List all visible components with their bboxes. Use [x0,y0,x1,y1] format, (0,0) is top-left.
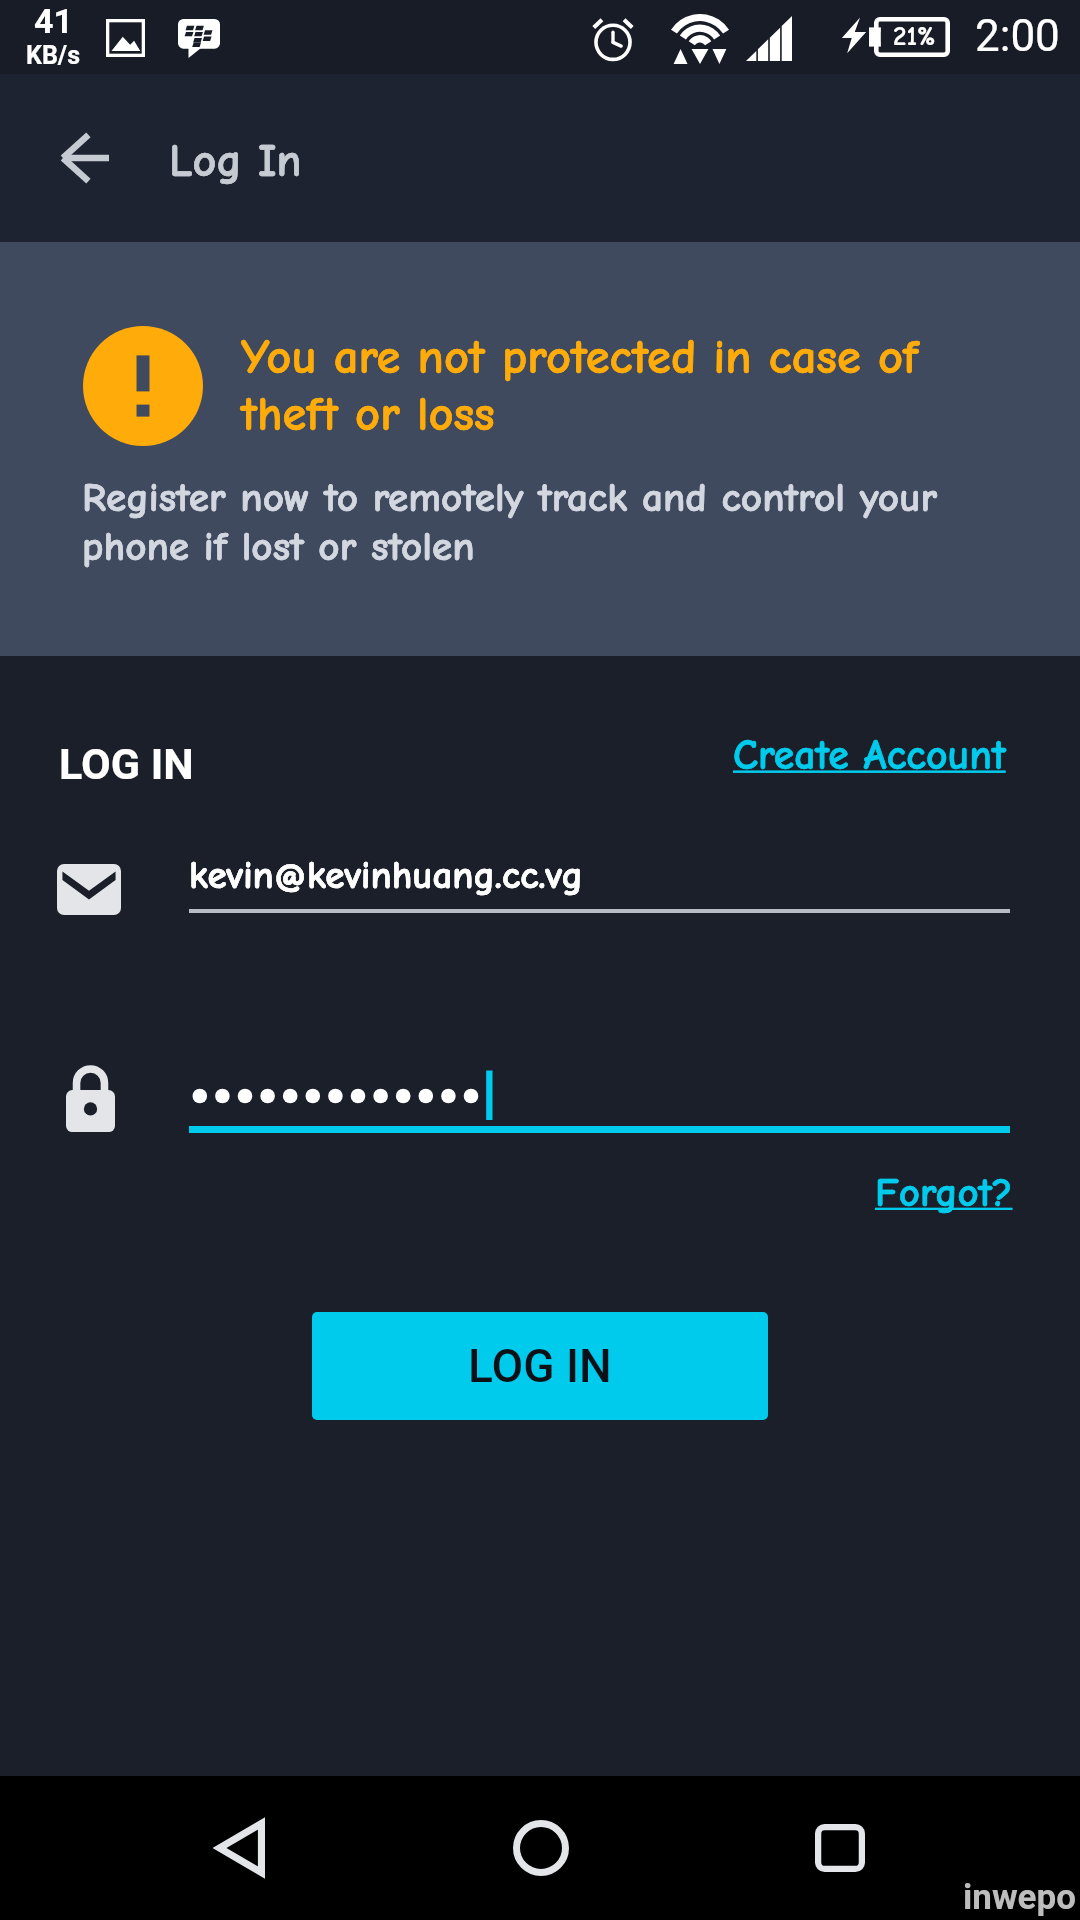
staticText: 21% [893,21,936,52]
button[interactable]: Back [150,1785,330,1911]
staticText: 41 [34,1,74,41]
staticText: KB/s [26,41,81,70]
staticText: kevin@kevinhuang.cc.vg [189,853,583,898]
button[interactable]: Recent apps [750,1785,930,1911]
staticText: LOG IN [468,1339,612,1393]
button[interactable]: Home [451,1785,631,1911]
staticText: Log In [169,135,302,188]
staticText: Forgot? [875,1169,1013,1216]
staticText: inwepo [963,1877,1077,1918]
button[interactable]: LOG IN [59,739,194,789]
staticText: Forgot? [875,1169,1013,1216]
button[interactable]: LOG IN [312,1312,768,1420]
button[interactable]: Back [30,104,138,212]
staticText: Register now to remotely track and contr… [82,474,938,570]
staticText: Register now to remotely track and contr… [82,474,938,570]
staticText: You are not protected in case of theft o… [241,329,919,443]
button[interactable]: Forgot? [875,1169,1013,1216]
staticText: Create Account [733,731,1006,779]
staticText: 2:00 [975,10,1060,62]
button[interactable]: Create Account [733,731,1006,779]
staticText: Log In [169,135,302,188]
staticText: kevin@kevinhuang.cc.vg [189,853,583,898]
staticText: You are not protected in case of theft o… [241,329,919,443]
staticText: Create Account [733,731,1006,779]
